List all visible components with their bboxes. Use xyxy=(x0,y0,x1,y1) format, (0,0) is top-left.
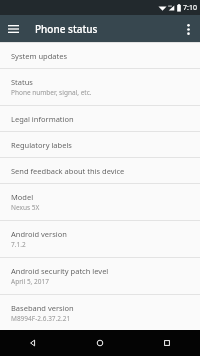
staticText: 7.1.2 xyxy=(11,240,26,249)
staticText: Nexus 5X xyxy=(11,203,40,212)
staticText: Phone number, signal, etc. xyxy=(11,88,92,97)
button[interactable]: Legal information xyxy=(0,106,200,131)
button[interactable]: Android security patch level xyxy=(0,258,200,294)
button[interactable]: Model xyxy=(0,184,200,220)
staticText: Baseband version xyxy=(11,303,74,313)
staticText: Phone status xyxy=(35,22,98,36)
button[interactable]: Back xyxy=(0,330,66,356)
staticText: Regulatory labels xyxy=(11,140,72,150)
staticText: Android security patch level xyxy=(11,266,109,276)
staticText: 7:10 xyxy=(183,3,197,13)
staticText: Legal information xyxy=(11,114,74,124)
button[interactable]: Send feedback about this device xyxy=(0,158,200,183)
staticText: April 5, 2017 xyxy=(11,277,49,286)
button[interactable]: Recent apps xyxy=(133,330,200,356)
staticText: System updates xyxy=(11,51,68,61)
button[interactable]: System updates xyxy=(0,43,200,68)
staticText: Send feedback about this device xyxy=(11,166,125,176)
button[interactable]: More options xyxy=(176,17,200,41)
staticText: Model xyxy=(11,192,34,202)
button[interactable]: Android version xyxy=(0,221,200,257)
staticText: M8994F-2.6.37.2.21 xyxy=(11,314,71,323)
button[interactable]: Status xyxy=(0,69,200,105)
button[interactable]: Open navigation drawer xyxy=(0,15,27,42)
staticText: Android version xyxy=(11,229,67,239)
staticText: Status xyxy=(11,77,33,87)
button[interactable]: Home xyxy=(66,330,133,356)
button[interactable]: Regulatory labels xyxy=(0,132,200,157)
button[interactable]: Baseband version xyxy=(0,295,200,330)
